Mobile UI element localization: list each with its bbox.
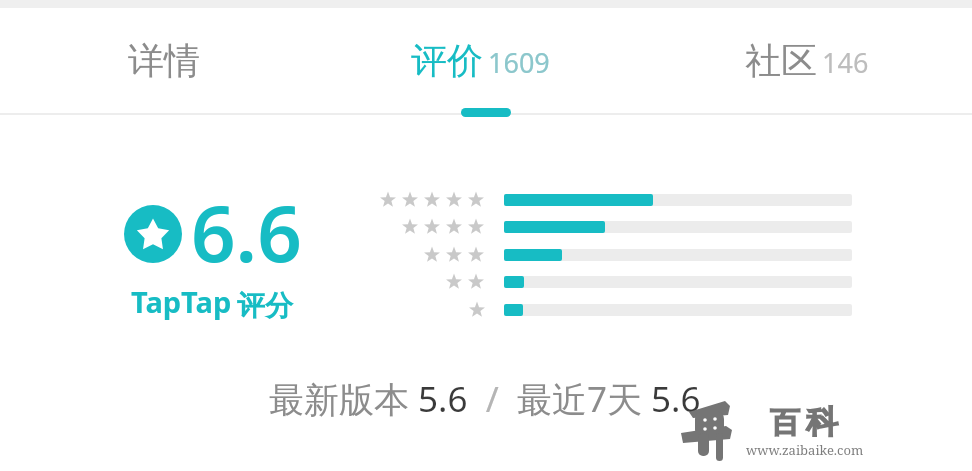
staticText: 详情 [128,38,200,83]
staticText: 科 [806,402,838,442]
staticText: 146 [822,44,869,81]
button[interactable]: 社区 [648,8,972,113]
button[interactable]: 评价 [324,8,648,113]
staticText: 社区 [745,38,817,83]
button[interactable]: 详情 [0,8,324,113]
button[interactable]: 5 star ratings [370,187,856,213]
other: 再百科 watermark logo [680,398,740,462]
button[interactable]: 1 star ratings [370,297,856,323]
staticText: 评分 [237,288,293,323]
button[interactable]: 2 star ratings [370,269,856,295]
staticText: TapTap [131,282,232,321]
staticText: 评价 [411,38,483,83]
button[interactable]: 6.6 [118,196,308,326]
staticText: 6.6 [191,179,302,285]
staticText: 百 [770,404,800,442]
staticText: 1609 [488,44,550,81]
staticText: www.zaibaike.com [746,441,864,459]
button[interactable]: 3 star ratings [370,242,856,268]
staticText: 最新版本 5.6 / 最近7天 5.6 [269,375,701,423]
button[interactable]: 4 star ratings [370,214,856,240]
